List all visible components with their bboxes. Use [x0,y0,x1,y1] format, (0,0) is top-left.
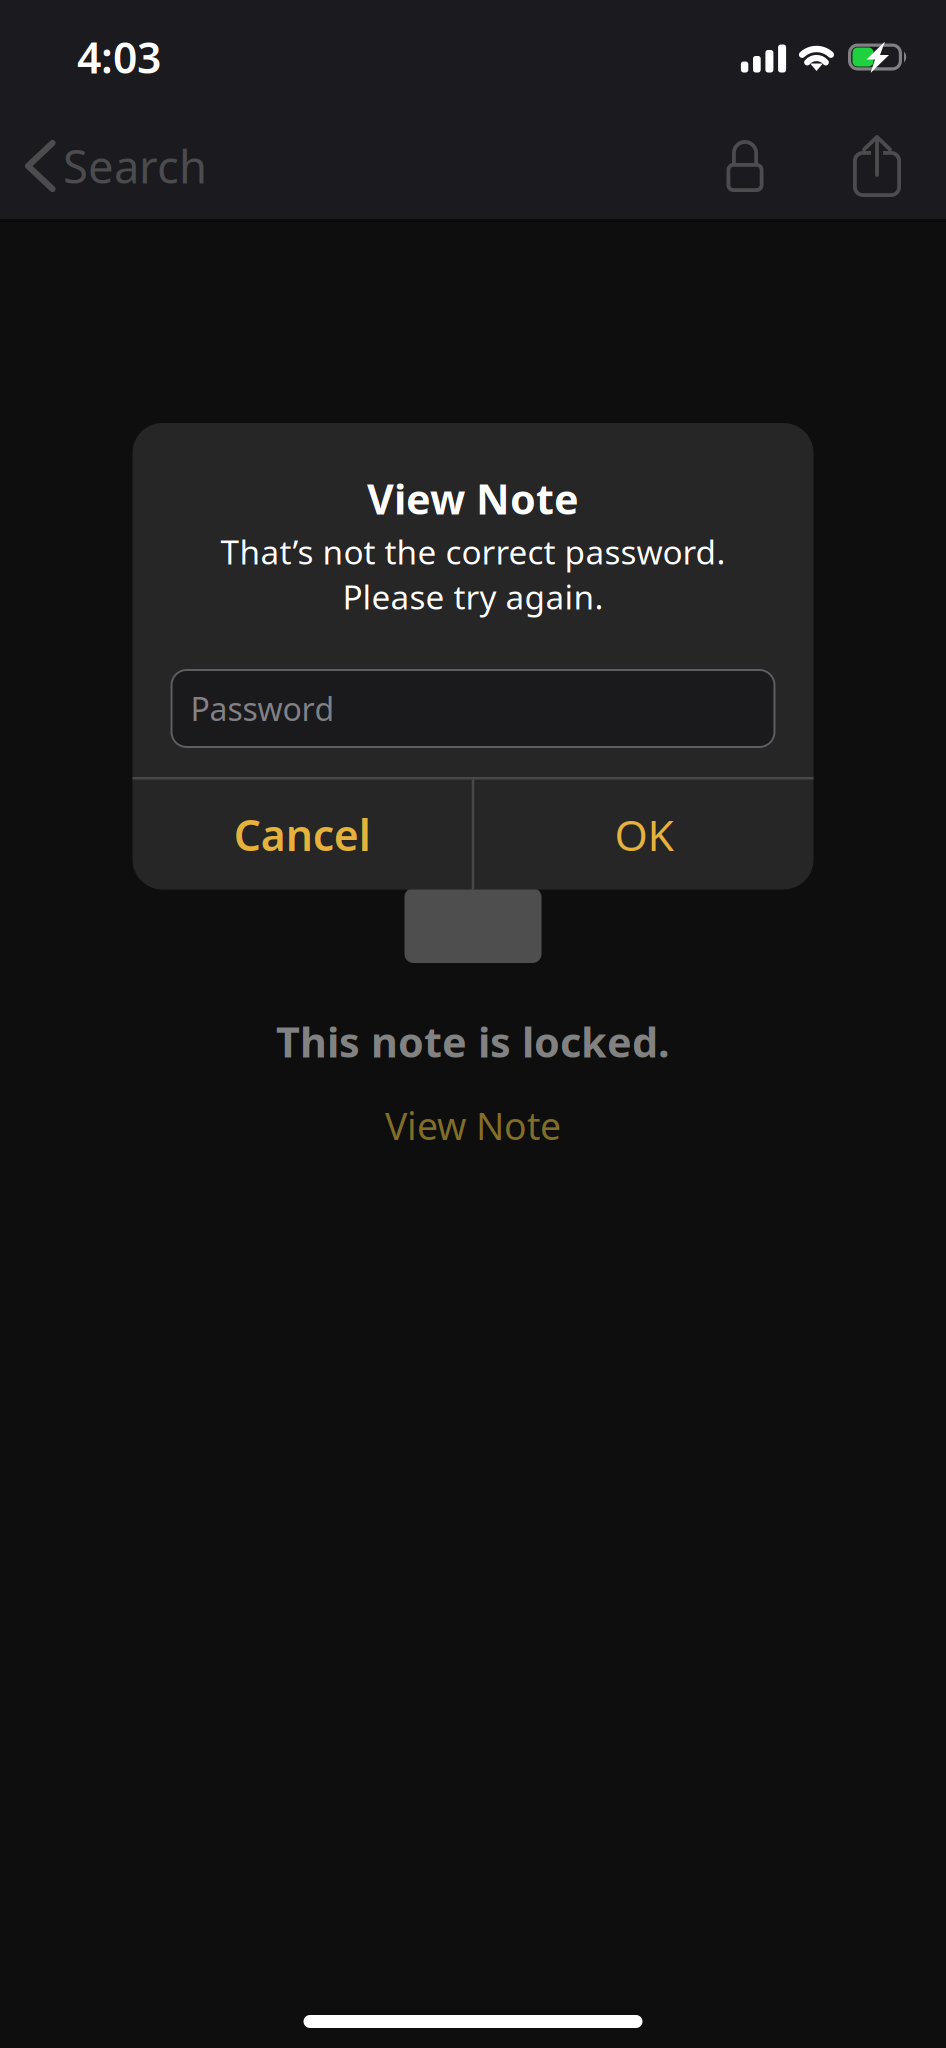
staticText: Please try again. [342,574,603,619]
button[interactable]: View Note [361,1098,585,1153]
button[interactable]: Search [0,118,223,214]
staticText: View Note [385,1101,561,1150]
staticText: This note is locked. [276,1014,670,1069]
button[interactable]: OK [474,779,813,889]
button[interactable]: Share [830,118,924,214]
staticText: 4:03 [77,29,161,85]
button[interactable]: Lock Note [698,118,792,214]
button[interactable]: Cancel [132,779,472,889]
staticText: Search [63,136,207,196]
staticText: Password [190,687,334,730]
staticText: View Note [367,471,579,526]
staticText: That’s not the correct password. [220,529,725,574]
staticText: OK [614,806,673,863]
staticText: Cancel [234,806,371,863]
